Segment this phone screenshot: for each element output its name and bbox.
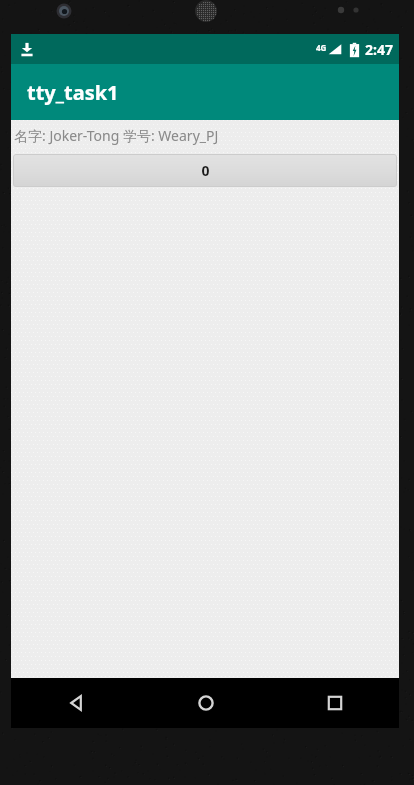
staticText: 0 <box>201 161 210 180</box>
staticText: 名字: Joker-Tong 学号: Weary_PJ <box>14 126 219 145</box>
button[interactable]: Home <box>141 678 270 728</box>
staticText: 4G <box>316 42 327 53</box>
staticText: 2:47 <box>365 40 393 59</box>
staticText: tty_task1 <box>27 79 119 106</box>
button[interactable]: 0 <box>13 154 397 187</box>
button[interactable]: Recent apps <box>270 678 399 728</box>
button[interactable]: Back <box>11 678 141 728</box>
